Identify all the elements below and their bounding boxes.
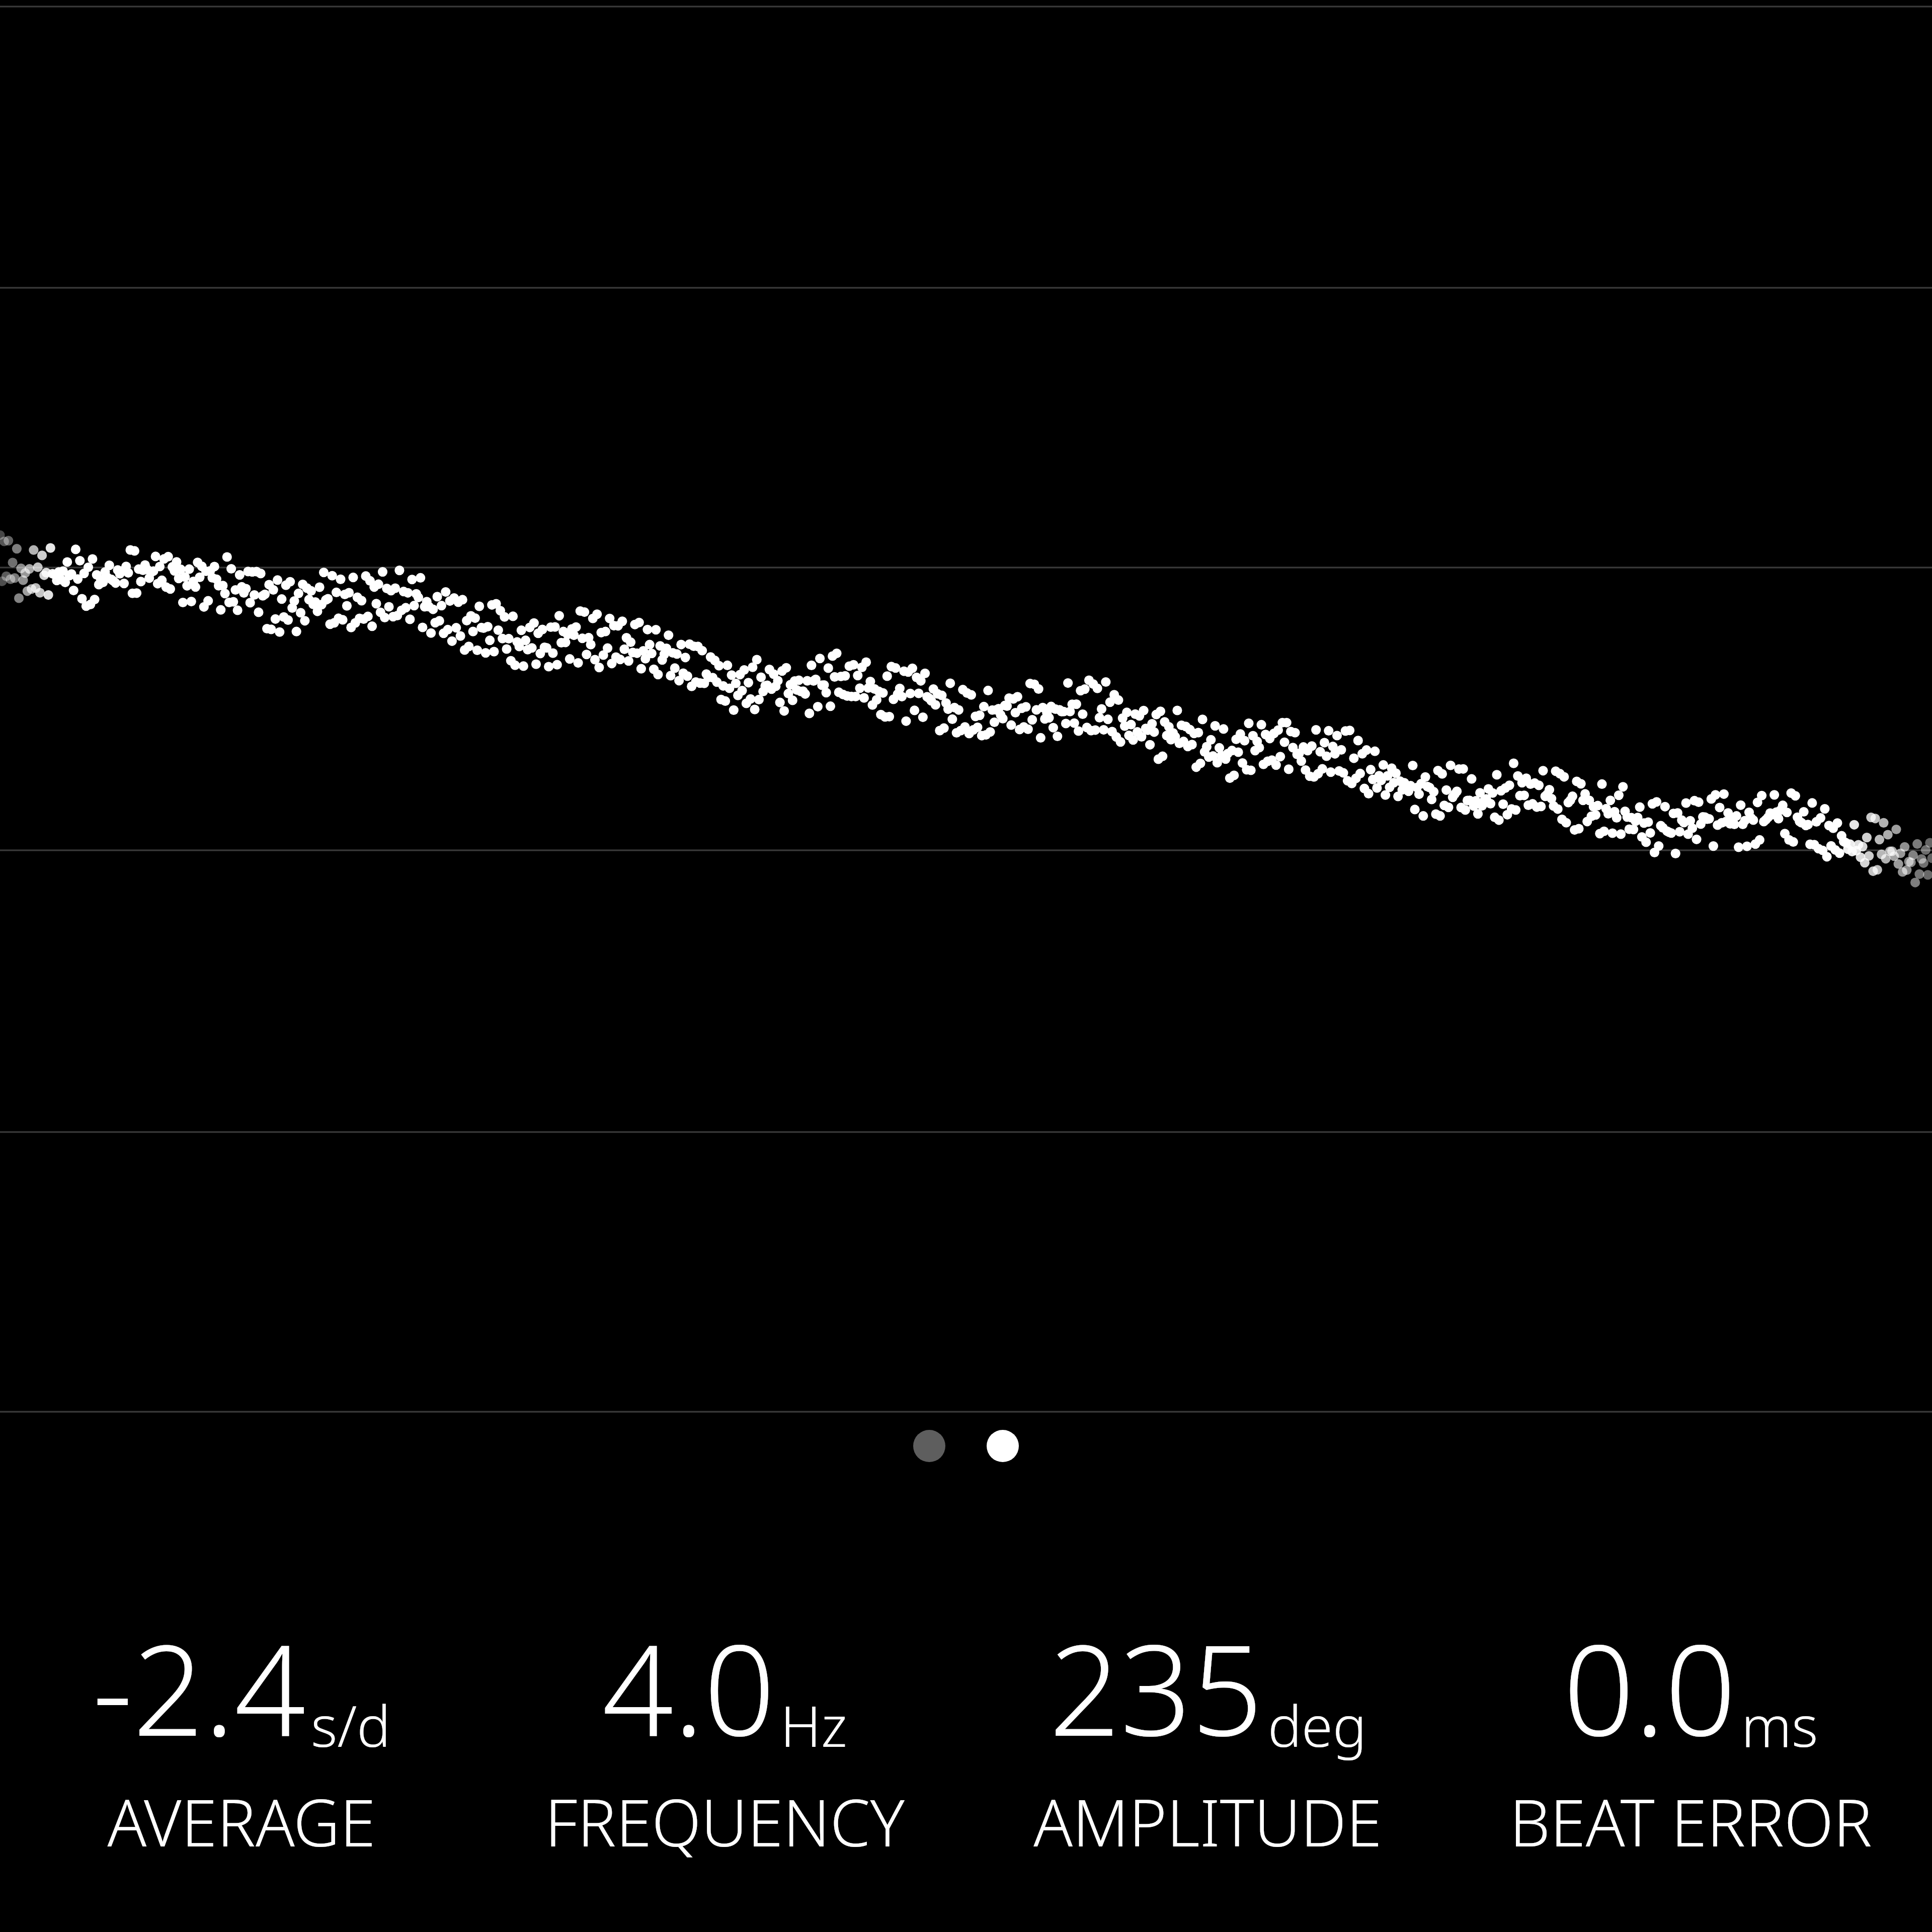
staticText: deg [1268,1686,1366,1763]
staticText: ms [1741,1686,1818,1763]
button[interactable]: Page 1 of 2 [913,1430,945,1462]
button[interactable]: 235 [966,1602,1449,1865]
button[interactable]: 0.0 [1449,1602,1932,1865]
staticText: 0.0 [1563,1602,1736,1773]
staticText: BEAT ERROR [1509,1778,1872,1865]
staticText: 4.0 [602,1602,775,1773]
staticText: AMPLITUDE [1033,1778,1382,1865]
staticText: Hz [780,1686,847,1763]
button[interactable]: Page 2 of 2, selected [987,1430,1019,1462]
staticText: s/d [311,1686,391,1763]
staticText: FREQUENCY [545,1778,905,1865]
staticText: -2.4 [93,1602,306,1773]
button[interactable]: -2.4 [0,1602,483,1865]
staticText: AVERAGE [107,1778,376,1865]
staticText: 235 [1049,1602,1263,1773]
button[interactable]: 4.0 [483,1602,966,1865]
